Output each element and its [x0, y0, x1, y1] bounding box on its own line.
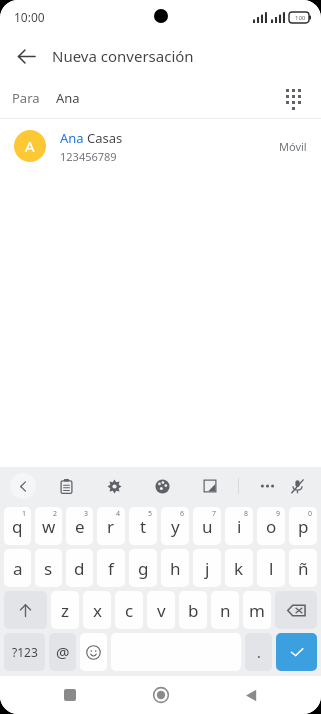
staticText: a	[13, 557, 23, 580]
staticText: .	[257, 643, 261, 662]
staticText: Para	[12, 89, 40, 107]
staticText: ?123	[12, 644, 38, 660]
staticText: j	[205, 557, 210, 580]
staticText: A	[25, 136, 35, 156]
staticText: 6	[180, 509, 185, 519]
staticText: 0	[308, 509, 313, 519]
button[interactable]: y	[161, 507, 189, 545]
staticText: 9	[276, 509, 281, 519]
button[interactable]: k	[225, 549, 253, 587]
staticText: 3	[84, 509, 89, 519]
staticText: m	[249, 599, 265, 622]
staticText: z	[61, 599, 69, 622]
staticText: Ana Casas	[60, 129, 123, 147]
button[interactable]: Expand toolbar	[10, 473, 36, 499]
button[interactable]: w	[35, 507, 62, 545]
staticText: i	[237, 515, 242, 538]
staticText: 4	[116, 509, 121, 519]
button[interactable]: o	[257, 507, 285, 545]
button[interactable]: c	[115, 591, 143, 629]
button[interactable]: .	[245, 633, 272, 671]
button[interactable]: Emoji	[80, 633, 107, 671]
staticText: x	[93, 599, 102, 622]
staticText: f	[108, 557, 114, 580]
button[interactable]: t	[129, 507, 157, 545]
button[interactable]: b	[179, 591, 207, 629]
button[interactable]: n	[211, 591, 239, 629]
staticText: c	[125, 599, 134, 622]
staticText: 10:00	[14, 9, 45, 25]
staticText: k	[234, 557, 244, 580]
staticText: h	[170, 557, 181, 580]
button[interactable]: x	[83, 591, 111, 629]
button[interactable]: m	[243, 591, 271, 629]
staticText: 123456789	[60, 149, 117, 164]
button[interactable]: ñ	[289, 549, 317, 587]
staticText: e	[75, 515, 85, 538]
button[interactable]: j	[193, 549, 221, 587]
button[interactable]: Voice input muted	[285, 474, 309, 498]
staticText: n	[220, 599, 231, 622]
button[interactable]: Enter	[276, 633, 317, 671]
staticText: 100	[295, 14, 306, 22]
staticText: w	[42, 515, 56, 538]
button[interactable]: Shift	[4, 591, 47, 629]
staticText: d	[74, 557, 85, 580]
staticText: o	[266, 515, 277, 538]
staticText: b	[188, 599, 199, 622]
staticText: s	[44, 557, 53, 580]
staticText: g	[138, 557, 149, 580]
staticText: p	[298, 515, 309, 538]
staticText: t	[140, 515, 147, 538]
button[interactable]: g	[129, 549, 157, 587]
button[interactable]: A	[0, 119, 321, 173]
button[interactable]: p	[289, 507, 317, 545]
staticText: q	[12, 515, 23, 538]
button[interactable]: Dialpad	[277, 82, 309, 114]
staticText: 2	[53, 509, 58, 519]
button[interactable]: @	[49, 633, 76, 671]
button[interactable]: Settings	[102, 474, 126, 498]
staticText: l	[269, 557, 274, 580]
button[interactable]: q	[4, 507, 31, 545]
staticText: Móvil	[279, 139, 307, 154]
button[interactable]: Backspace	[275, 591, 317, 629]
button[interactable]: More options	[255, 474, 279, 498]
staticText: @	[56, 642, 70, 662]
button[interactable]: u	[193, 507, 221, 545]
staticText: Ana	[56, 89, 80, 107]
button[interactable]: Recents	[50, 676, 90, 714]
button[interactable]: z	[51, 591, 79, 629]
staticText: 8	[244, 509, 249, 519]
button[interactable]: r	[97, 507, 125, 545]
staticText: Nueva conversación	[52, 46, 194, 66]
button[interactable]: Themes	[150, 474, 174, 498]
staticText: 1	[22, 509, 27, 519]
button[interactable]: Para	[0, 78, 321, 118]
staticText: y	[171, 515, 180, 538]
staticText: 5	[148, 509, 153, 519]
button[interactable]: s	[35, 549, 62, 587]
button[interactable]: Back	[231, 676, 271, 714]
button[interactable]: a	[4, 549, 31, 587]
staticText: u	[202, 515, 213, 538]
staticText: ñ	[298, 557, 309, 580]
button[interactable]: Resize keyboard	[198, 474, 222, 498]
button[interactable]: Home	[141, 676, 181, 714]
staticText: r	[107, 515, 115, 538]
button[interactable]: e	[66, 507, 93, 545]
button[interactable]: l	[257, 549, 285, 587]
button[interactable]: v	[147, 591, 175, 629]
button[interactable]: h	[161, 549, 189, 587]
button[interactable]: Back	[8, 38, 44, 74]
button[interactable]: f	[97, 549, 125, 587]
staticText: 7	[212, 509, 217, 519]
button[interactable]: Clipboard	[54, 474, 78, 498]
button[interactable]: ?123	[4, 633, 45, 671]
button[interactable]: i	[225, 507, 253, 545]
button[interactable]: d	[66, 549, 93, 587]
staticText: v	[157, 599, 166, 622]
